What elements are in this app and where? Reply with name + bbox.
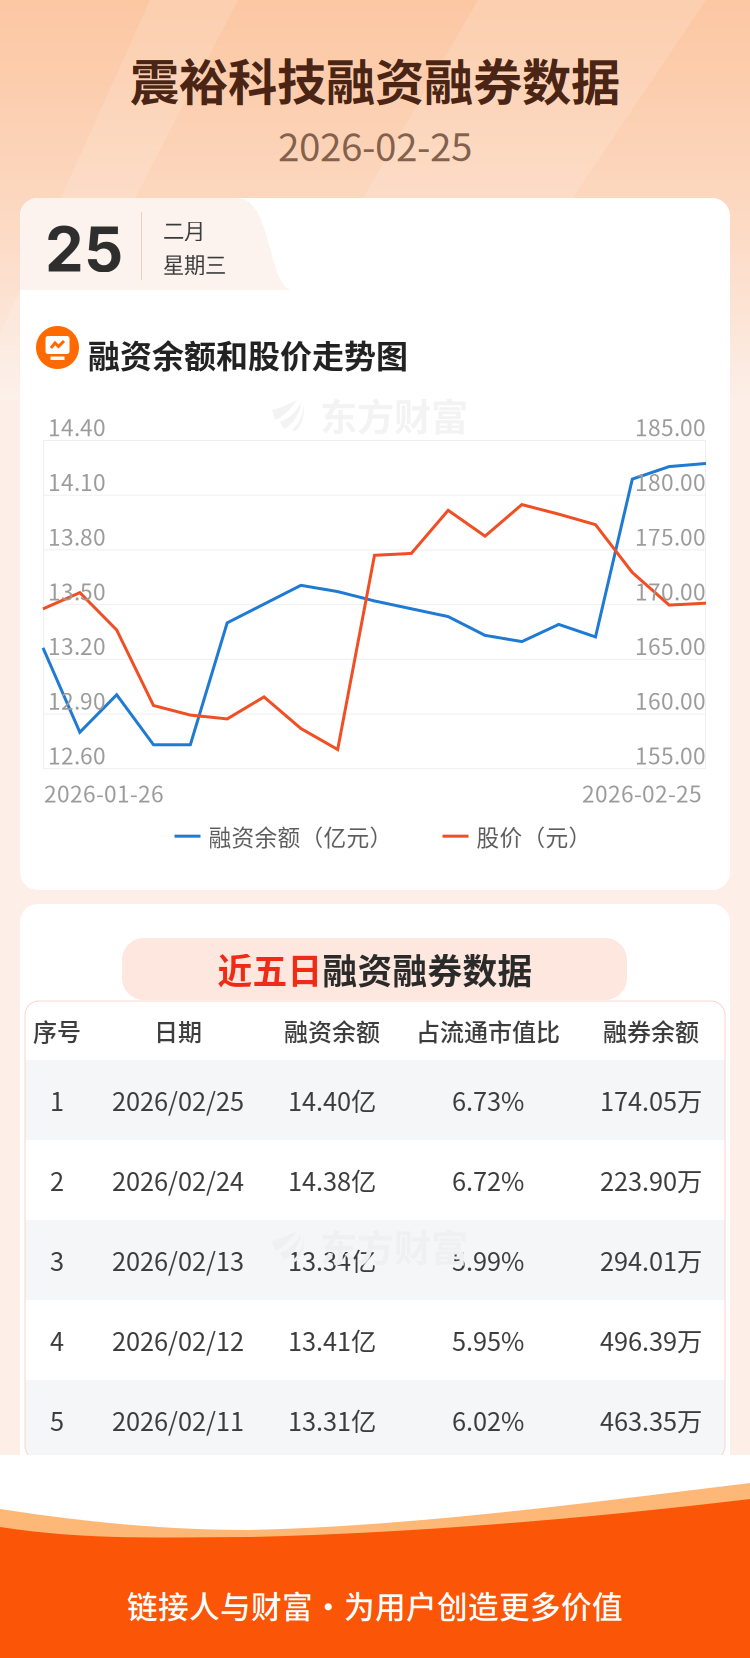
staticText: 2026/02/12 — [112, 1322, 244, 1358]
staticText: 12.60 — [48, 738, 106, 771]
staticText: 占流通市值比 — [416, 1013, 560, 1048]
staticText: 东方财富 — [320, 388, 468, 442]
staticText: 链接人与财富·为用户创造更多价值 — [127, 1583, 623, 1627]
staticText: 4 — [50, 1322, 64, 1358]
staticText: 2026/02/13 — [112, 1242, 244, 1278]
staticText: 融券余额 — [603, 1013, 699, 1048]
staticText: 180.00 — [635, 465, 706, 497]
staticText: 174.05万 — [600, 1082, 702, 1118]
staticText: 股价（元） — [476, 820, 591, 853]
staticText: 二月 — [163, 214, 205, 245]
staticText: 1 — [50, 1082, 64, 1118]
staticText: 496.39万 — [600, 1322, 702, 1358]
staticText: 序号 — [33, 1013, 81, 1048]
staticText: 5.95% — [452, 1322, 524, 1358]
staticText: 3 — [50, 1242, 64, 1278]
staticText: 2026/02/24 — [112, 1162, 244, 1198]
staticText: 2026-02-25 — [278, 116, 472, 172]
staticText: 14.10 — [48, 465, 106, 497]
staticText: 155.00 — [635, 738, 706, 771]
staticText: 13.80 — [48, 519, 106, 552]
staticText: 175.00 — [635, 519, 706, 552]
staticText: 2026-01-26 — [44, 776, 164, 809]
staticText: 185.00 — [635, 410, 706, 443]
staticText: 星期三 — [163, 248, 226, 279]
staticText: 463.35万 — [600, 1402, 702, 1438]
staticText: 14.40 — [48, 410, 106, 443]
staticText: 融资余额（亿元） — [208, 820, 392, 853]
staticText: 12.90 — [48, 683, 106, 716]
staticText: 2 — [50, 1162, 64, 1198]
staticText: 2026/02/25 — [112, 1082, 244, 1118]
staticText: 融资余额和股价走势图 — [88, 331, 408, 377]
staticText: 6.02% — [452, 1402, 524, 1438]
staticText: 13.20 — [48, 629, 106, 662]
staticText: 160.00 — [635, 683, 706, 716]
staticText: 东方财富 — [320, 1219, 468, 1273]
staticText: 5 — [50, 1402, 64, 1438]
staticText: 13.50 — [48, 574, 106, 607]
staticText: 13.41亿 — [288, 1322, 376, 1358]
staticText: 25 — [45, 212, 123, 286]
staticText: 6.73% — [452, 1082, 524, 1118]
staticText: 223.90万 — [600, 1162, 702, 1198]
staticText: 170.00 — [635, 574, 706, 607]
staticText: 14.40亿 — [288, 1082, 376, 1118]
staticText: 日期 — [154, 1013, 202, 1048]
staticText: 融资余额 — [284, 1013, 380, 1048]
staticText: 165.00 — [635, 629, 706, 662]
staticText: 6.72% — [452, 1162, 524, 1198]
staticText: 13.34亿 — [288, 1242, 376, 1278]
staticText: 2026-02-25 — [582, 776, 702, 809]
staticText: 近五日 — [217, 944, 322, 994]
staticText: 5.99% — [452, 1242, 524, 1278]
staticText: 2026/02/11 — [112, 1402, 244, 1438]
staticText: 震裕科技融资融券数据 — [130, 43, 620, 114]
staticText: 294.01万 — [600, 1242, 702, 1278]
staticText: 融资融券数据 — [322, 944, 532, 994]
staticText: 14.38亿 — [288, 1162, 376, 1198]
staticText: 13.31亿 — [288, 1402, 376, 1438]
